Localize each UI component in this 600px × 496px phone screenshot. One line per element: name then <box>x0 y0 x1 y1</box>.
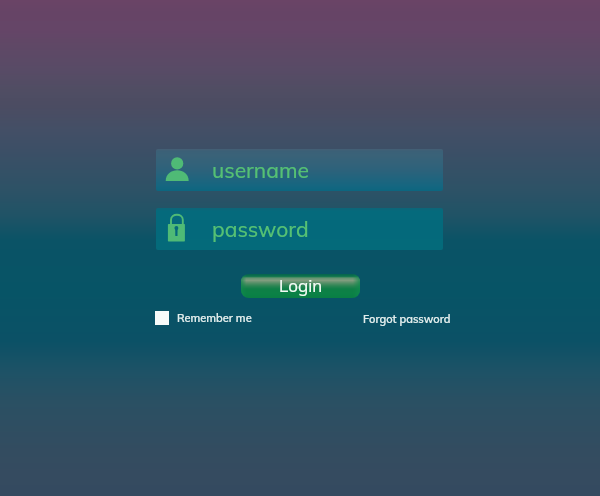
staticText: Login <box>279 275 323 296</box>
staticText: Remember me <box>177 311 252 325</box>
button[interactable]: Forgot password <box>363 312 451 326</box>
button[interactable]: Login <box>241 274 360 298</box>
staticText: password <box>212 216 309 242</box>
button[interactable]: password <box>156 208 443 250</box>
button[interactable]: Remember me <box>155 311 252 325</box>
staticText: username <box>212 157 309 183</box>
button[interactable]: username <box>156 149 443 191</box>
